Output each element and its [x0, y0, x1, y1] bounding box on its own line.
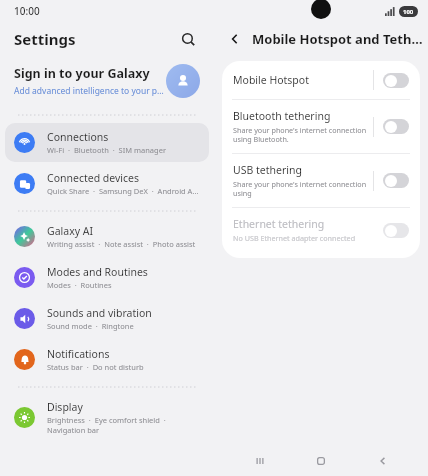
staticText: Modes · Routines: [47, 280, 112, 290]
staticText: Notifications: [47, 347, 110, 361]
staticText: Connections: [47, 130, 109, 144]
button[interactable]: Sounds and vibration: [5, 299, 209, 338]
button[interactable]: [383, 73, 409, 88]
button[interactable]: Search: [174, 25, 202, 53]
button[interactable]: Bluetooth tethering: [222, 100, 420, 153]
staticText: USB tethering: [233, 163, 302, 177]
staticText: Writing assist · Note assist · Photo ass…: [47, 239, 196, 249]
staticText: Share your phone's internet connection u…: [233, 125, 367, 144]
staticText: No USB Ethernet adapter connected: [233, 233, 356, 243]
button[interactable]: Home: [305, 446, 337, 476]
button[interactable]: [383, 173, 409, 188]
button[interactable]: USB tethering: [222, 154, 420, 207]
button[interactable]: [383, 223, 409, 238]
staticText: Sign in to your Galaxy: [14, 65, 150, 82]
button[interactable]: [383, 119, 409, 134]
button[interactable]: Connections: [5, 123, 209, 162]
staticText: Share your phone's internet connection u…: [233, 179, 367, 198]
staticText: Brightness · Eye comfort shield · Naviga…: [47, 415, 199, 435]
staticText: Status bar · Do not disturb: [47, 362, 144, 372]
button[interactable]: Modes and Routines: [5, 258, 209, 297]
staticText: 10:00: [14, 4, 40, 18]
button[interactable]: Recents: [244, 446, 276, 476]
staticText: Mobile Hotspot and Tetheri...: [252, 30, 428, 48]
staticText: Mobile Hotspot: [233, 73, 309, 87]
staticText: Add advanced intelligence to your phone.: [14, 85, 166, 97]
button[interactable]: Display: [5, 393, 209, 442]
button[interactable]: Back: [367, 446, 399, 476]
staticText: Bluetooth tethering: [233, 109, 331, 123]
button[interactable]: Back: [222, 26, 248, 52]
staticText: Modes and Routines: [47, 265, 148, 279]
button[interactable]: Sign in to your Galaxy: [0, 56, 214, 106]
button[interactable]: Ethernet tethering: [222, 208, 420, 252]
staticText: Quick Share · Samsung DeX · Android Auto: [47, 186, 199, 196]
staticText: Ethernet tethering: [233, 217, 325, 231]
button[interactable]: Notifications: [5, 340, 209, 379]
staticText: Settings: [14, 29, 76, 49]
staticText: Sound mode · Ringtone: [47, 321, 134, 331]
button[interactable]: Connected devices: [5, 164, 209, 203]
button[interactable]: Galaxy AI: [5, 217, 209, 256]
staticText: Display: [47, 400, 83, 414]
staticText: Wi-Fi · Bluetooth · SIM manager: [47, 145, 166, 155]
staticText: Galaxy AI: [47, 224, 94, 238]
staticText: Sounds and vibration: [47, 306, 152, 320]
staticText: Connected devices: [47, 171, 140, 185]
button[interactable]: Mobile Hotspot: [222, 61, 420, 99]
staticText: 100: [403, 8, 414, 16]
